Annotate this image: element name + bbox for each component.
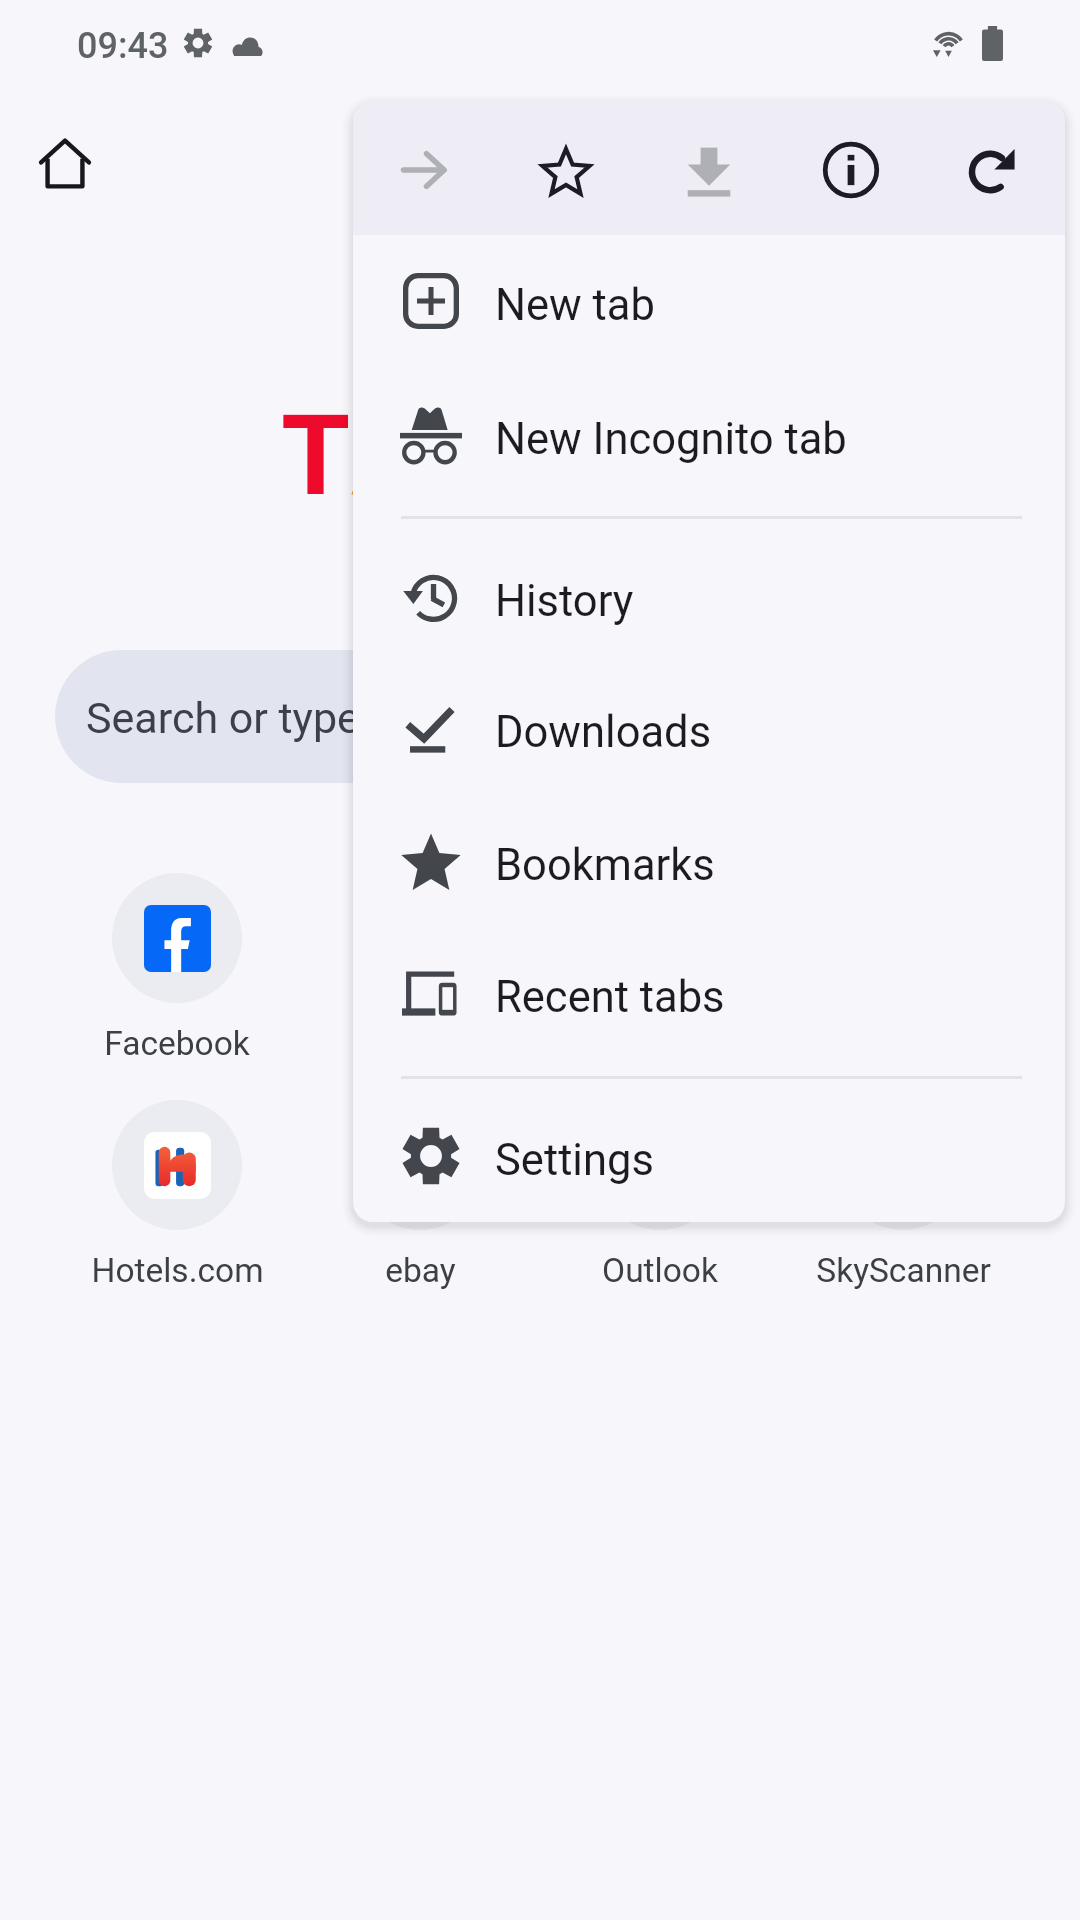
staticText: Outlook bbox=[602, 1251, 718, 1290]
staticText: A bbox=[351, 390, 427, 521]
button[interactable] bbox=[595, 1100, 725, 1230]
button[interactable]: Recent tabs bbox=[353, 935, 1065, 1051]
button[interactable] bbox=[838, 1100, 968, 1230]
staticText: Search or type URL bbox=[86, 693, 449, 743]
staticText: Recent tabs bbox=[495, 972, 725, 1023]
staticText: Hotels.com bbox=[91, 1251, 264, 1290]
button[interactable] bbox=[112, 873, 242, 1003]
staticText: Downloads bbox=[495, 707, 712, 758]
staticText: ebay bbox=[385, 1251, 456, 1290]
button[interactable]: Bookmarks bbox=[353, 803, 1065, 919]
button[interactable] bbox=[355, 873, 485, 1003]
staticText: New Incognito tab bbox=[495, 414, 847, 465]
button[interactable] bbox=[355, 1100, 485, 1230]
button[interactable]: Search or type URL bbox=[55, 650, 1025, 783]
button[interactable]: Home bbox=[25, 124, 105, 204]
staticText: 09:43 bbox=[77, 25, 169, 67]
staticText: Settings bbox=[495, 1135, 654, 1186]
staticText: History bbox=[495, 576, 634, 627]
staticText: Bookmarks bbox=[495, 840, 715, 891]
staticText: T bbox=[281, 390, 351, 521]
button[interactable]: Downloads bbox=[353, 670, 1065, 786]
staticText: Facebook bbox=[104, 1024, 250, 1063]
button[interactable]: History bbox=[353, 539, 1065, 655]
button[interactable]: Download page bbox=[654, 115, 764, 225]
button[interactable]: Page info bbox=[796, 115, 906, 225]
button[interactable]: Bookmark this page bbox=[511, 115, 621, 225]
button[interactable]: Forward bbox=[369, 115, 479, 225]
button[interactable]: Reload bbox=[938, 115, 1048, 225]
button[interactable]: New Incognito tab bbox=[353, 377, 1065, 493]
button[interactable]: Settings bbox=[353, 1098, 1065, 1214]
button[interactable] bbox=[595, 873, 725, 1003]
button[interactable]: New tab bbox=[353, 243, 1065, 359]
button[interactable] bbox=[112, 1100, 242, 1230]
staticText: New tab bbox=[495, 280, 655, 331]
staticText: SkyScanner bbox=[816, 1251, 991, 1290]
